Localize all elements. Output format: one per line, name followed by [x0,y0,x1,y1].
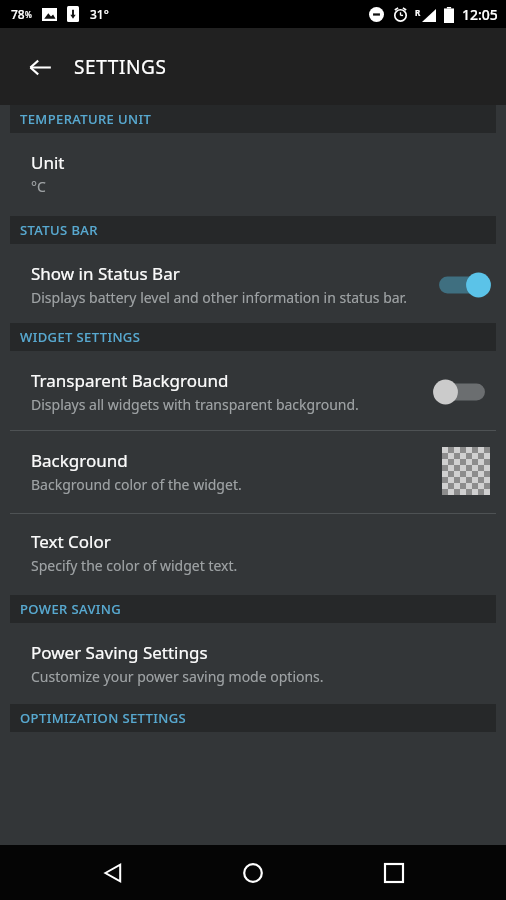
staticText: 78 [11,6,25,22]
button[interactable]: Recent apps [366,845,422,900]
staticText: POWER SAVING [20,600,122,618]
button[interactable]: Background color swatch [442,447,490,495]
staticText: SETTINGS [74,54,167,80]
button[interactable]: Transparent Background toggle, off [434,375,490,409]
button[interactable]: Power Saving Settings [0,623,506,704]
staticText: Specify the color of widget text. [31,556,238,575]
staticText: Text Color [31,530,111,553]
button[interactable]: Back [85,845,141,900]
staticText: 31° [90,6,109,22]
staticText: Unit [31,151,65,174]
button[interactable]: Unit [0,133,506,216]
button[interactable]: Transparent Background [0,351,506,430]
button[interactable]: Home [225,845,281,900]
staticText: 12:05 [462,5,498,24]
button[interactable]: Background [0,431,506,513]
staticText: °C [31,177,46,196]
staticText: Customize your power saving mode options… [31,667,324,686]
staticText: Power Saving Settings [31,641,208,664]
button[interactable]: Show in Status Bar toggle, on [434,268,490,302]
staticText: Background [31,449,128,472]
staticText: Transparent Background [31,369,229,392]
staticText: Displays battery level and other informa… [31,288,407,307]
staticText: Show in Status Bar [31,262,180,285]
button[interactable]: Back [16,43,64,91]
staticText: Displays all widgets with transparent ba… [31,395,359,414]
staticText: TEMPERATURE UNIT [20,110,152,128]
staticText: R [415,7,421,18]
staticText: WIDGET SETTINGS [20,328,141,346]
button[interactable]: Text Color [0,514,506,595]
staticText: OPTIMIZATION SETTINGS [20,709,187,727]
staticText: % [25,9,32,20]
button[interactable]: Show in Status Bar [0,244,506,323]
staticText: STATUS BAR [20,221,98,239]
staticText: Background color of the widget. [31,475,242,494]
